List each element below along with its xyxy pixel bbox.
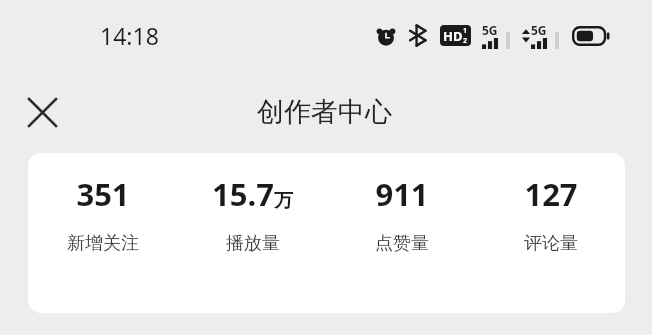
staticText: 351 (76, 173, 130, 215)
staticText: 5G (482, 22, 498, 38)
staticText: 15.7 (212, 173, 274, 215)
button[interactable]: 911 (327, 173, 476, 255)
button[interactable]: 351 (28, 173, 178, 255)
staticText: 创作者中心 (257, 95, 392, 129)
staticText: 2 (463, 36, 468, 46)
staticText: 127 (524, 173, 578, 215)
staticText: 5G (531, 22, 547, 38)
staticText: 点赞量 (375, 232, 429, 255)
staticText: HD (443, 27, 463, 45)
staticText: 新增关注 (67, 232, 139, 255)
staticText: 14:18 (100, 20, 159, 51)
staticText: 1 (463, 26, 468, 36)
staticText: 评论量 (524, 232, 578, 255)
staticText: 播放量 (226, 232, 280, 255)
button[interactable]: Close (16, 86, 68, 138)
staticText: 万 (274, 189, 293, 213)
button[interactable]: 127 (476, 173, 625, 255)
button[interactable]: 15.7 (178, 173, 327, 255)
staticText: 911 (375, 173, 429, 215)
